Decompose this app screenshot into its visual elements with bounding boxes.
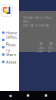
button[interactable]: About: [0, 58, 19, 65]
staticText: ◀: [8, 93, 11, 98]
button[interactable]: Share: [0, 51, 19, 58]
button[interactable]: Home: [19, 91, 37, 100]
staticText: History: [6, 42, 16, 52]
staticText: Translate text in other apps: [23, 16, 52, 23]
button[interactable]: Offline: [0, 36, 19, 44]
staticText: Home: [6, 30, 17, 35]
staticText: About: [6, 59, 16, 64]
button[interactable]: Back: [1, 91, 19, 100]
staticText: Voice: [48, 46, 54, 53]
staticText: Camera: [38, 46, 44, 53]
button[interactable]: Voice: [48, 42, 54, 53]
button[interactable]: Home: [0, 29, 19, 36]
staticText: Offline: [6, 35, 17, 45]
button[interactable]: History: [0, 44, 19, 51]
button[interactable]: Recents: [37, 91, 55, 100]
staticText: Share: [6, 52, 16, 57]
staticText: with tap to translate: [23, 24, 50, 27]
button[interactable]: Camera: [38, 42, 44, 53]
